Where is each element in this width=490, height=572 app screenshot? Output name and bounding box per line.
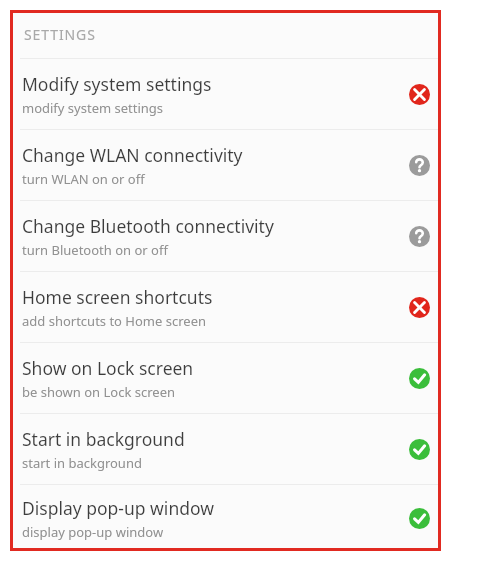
button[interactable]: Denied — [404, 292, 434, 322]
staticText: Display pop-up window — [22, 496, 214, 520]
staticText: Start in background — [22, 427, 185, 451]
staticText: turn Bluetooth on or off — [22, 241, 168, 259]
staticText: add shortcuts to Home screen — [22, 312, 207, 330]
staticText: display pop-up window — [22, 523, 164, 541]
button[interactable]: Allowed — [404, 503, 434, 533]
button[interactable]: Denied — [404, 79, 434, 109]
staticText: Change WLAN connectivity — [22, 143, 243, 167]
button[interactable]: Ask every time — [404, 150, 434, 180]
staticText: Show on Lock screen — [22, 356, 194, 380]
staticText: be shown on Lock screen — [22, 383, 175, 401]
button[interactable]: Change Bluetooth connectivity — [10, 201, 441, 271]
button[interactable]: Ask every time — [404, 221, 434, 251]
button[interactable]: Start in background — [10, 414, 441, 484]
button[interactable]: Home screen shortcuts — [10, 272, 441, 342]
button[interactable]: Change WLAN connectivity — [10, 130, 441, 200]
button[interactable]: Allowed — [404, 434, 434, 464]
staticText: Home screen shortcuts — [22, 285, 213, 309]
button[interactable]: Modify system settings — [10, 59, 441, 129]
staticText: modify system settings — [22, 99, 164, 117]
staticText: start in background — [22, 454, 142, 472]
staticText: SETTINGS — [24, 25, 96, 44]
staticText: Change Bluetooth connectivity — [22, 214, 274, 238]
staticText: Modify system settings — [22, 72, 212, 96]
button[interactable]: Show on Lock screen — [10, 343, 441, 413]
button[interactable]: Allowed — [404, 363, 434, 393]
button[interactable]: Display pop-up window — [10, 485, 441, 551]
staticText: turn WLAN on or off — [22, 170, 145, 188]
